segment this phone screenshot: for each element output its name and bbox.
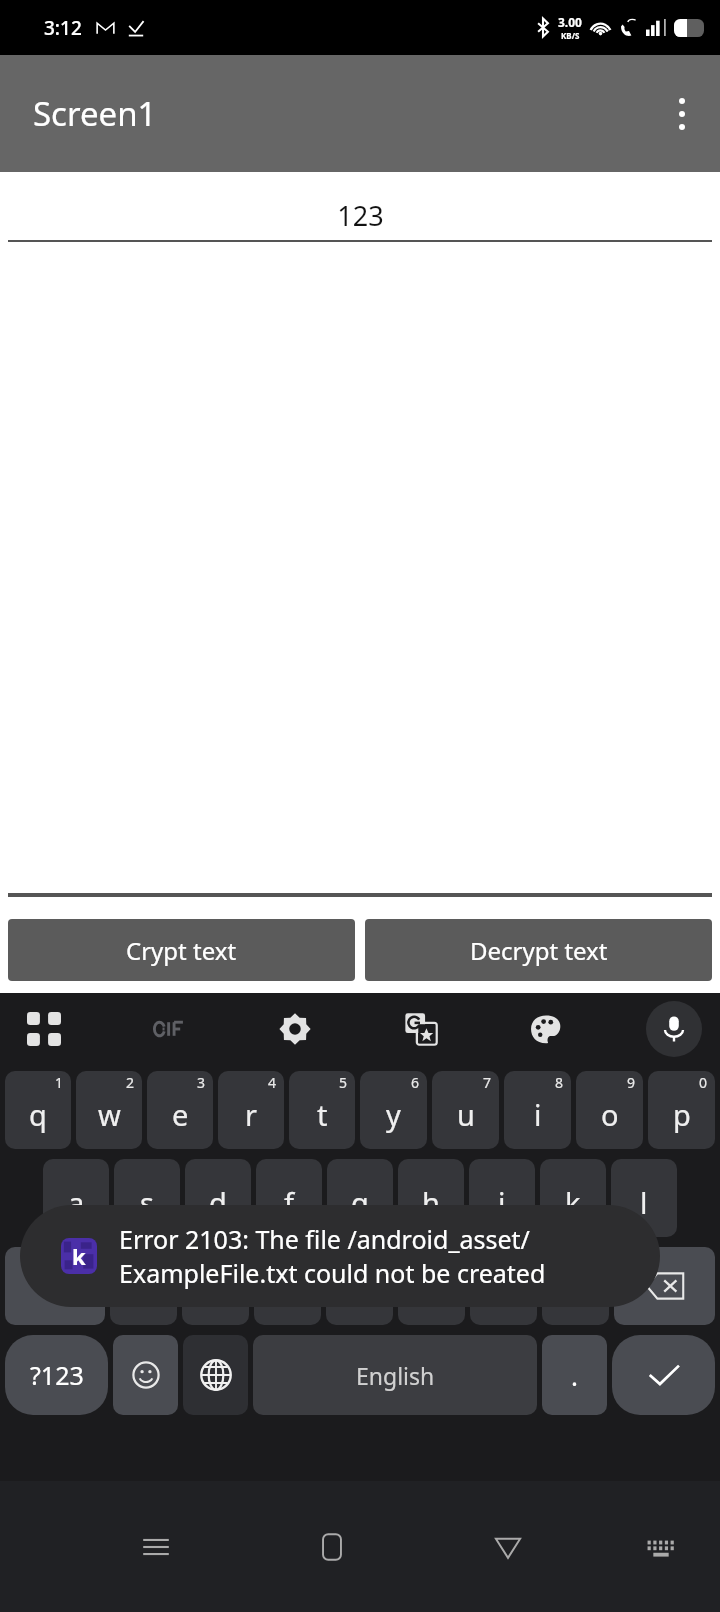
staticText: v: [352, 1271, 367, 1310]
staticText: p: [673, 1095, 691, 1134]
button[interactable]: k: [20, 1205, 660, 1307]
button[interactable]: 3: [147, 1071, 213, 1149]
button[interactable]: l: [611, 1159, 677, 1237]
staticText: 7: [483, 1073, 492, 1092]
button[interactable]: Voice input: [646, 1001, 702, 1057]
staticText: 1: [55, 1073, 64, 1092]
staticText: y: [386, 1095, 401, 1134]
button[interactable]: 2: [76, 1071, 142, 1149]
button[interactable]: Themes: [520, 1003, 572, 1055]
button[interactable]: Backspace: [614, 1247, 715, 1325]
button[interactable]: 6: [360, 1071, 427, 1149]
button[interactable]: Settings: [269, 1003, 321, 1055]
button[interactable]: g: [327, 1159, 393, 1237]
button[interactable]: Recent apps: [125, 1516, 187, 1578]
staticText: c: [281, 1271, 295, 1310]
button[interactable]: 1: [5, 1071, 71, 1149]
button[interactable]: ?123: [5, 1335, 108, 1415]
staticText: n: [495, 1271, 513, 1310]
staticText: g: [351, 1183, 369, 1222]
button[interactable]: 0: [648, 1071, 715, 1149]
staticText: i: [534, 1095, 542, 1134]
staticText: 3.00: [558, 14, 582, 30]
staticText: Decrypt text: [470, 934, 608, 967]
button[interactable]: m: [542, 1247, 609, 1325]
staticText: 0: [699, 1073, 708, 1092]
button[interactable]: Hide keyboard: [630, 1516, 692, 1578]
staticText: 4: [268, 1073, 277, 1092]
staticText: Error 2103: The file /android_asset/: [119, 1222, 530, 1256]
button[interactable]: Shift: [5, 1247, 105, 1325]
button[interactable]: 5: [289, 1071, 355, 1149]
button[interactable]: Back: [477, 1516, 539, 1578]
staticText: r: [245, 1095, 257, 1134]
button[interactable]: Enter: [612, 1335, 715, 1415]
staticText: u: [457, 1095, 475, 1134]
button[interactable]: 8: [504, 1071, 571, 1149]
button[interactable]: x: [182, 1247, 249, 1325]
staticText: e: [172, 1095, 189, 1134]
staticText: h: [422, 1183, 440, 1222]
staticText: .: [571, 1358, 578, 1393]
staticText: 6: [411, 1073, 420, 1092]
staticText: s: [140, 1183, 154, 1222]
button[interactable]: k: [540, 1159, 606, 1237]
button[interactable]: Apps: [18, 1003, 70, 1055]
button[interactable]: d: [185, 1159, 251, 1237]
button[interactable]: Home: [301, 1516, 363, 1578]
button[interactable]: j: [469, 1159, 535, 1237]
button[interactable]: n: [470, 1247, 537, 1325]
button[interactable]: English: [253, 1335, 537, 1415]
staticText: k: [565, 1183, 581, 1222]
button[interactable]: 123: [0, 190, 720, 240]
button[interactable]: Emoji: [113, 1335, 178, 1415]
staticText: a: [68, 1183, 85, 1222]
staticText: d: [209, 1183, 227, 1222]
button[interactable]: .: [542, 1335, 607, 1415]
button[interactable]: Crypt text: [8, 919, 355, 981]
button[interactable]: c: [254, 1247, 321, 1325]
staticText: b: [423, 1271, 441, 1310]
staticText: f: [284, 1183, 294, 1222]
button[interactable]: h: [398, 1159, 464, 1237]
staticText: l: [640, 1183, 648, 1222]
staticText: ?123: [30, 1358, 84, 1392]
staticText: o: [601, 1095, 619, 1134]
staticText: 123: [337, 197, 384, 234]
button[interactable]: More options: [658, 90, 706, 138]
staticText: 3:12: [44, 15, 82, 41]
button[interactable]: v: [326, 1247, 393, 1325]
staticText: x: [208, 1271, 224, 1310]
staticText: j: [498, 1183, 506, 1222]
button[interactable]: Change language: [183, 1335, 248, 1415]
button[interactable]: 7: [432, 1071, 499, 1149]
staticText: English: [356, 1360, 435, 1391]
button[interactable]: 4: [218, 1071, 284, 1149]
staticText: 5: [339, 1073, 348, 1092]
staticText: 9: [627, 1073, 636, 1092]
button[interactable]: 9: [576, 1071, 643, 1149]
button[interactable]: Translate: [395, 1003, 447, 1055]
staticText: ExampleFile.txt could not be created: [119, 1256, 546, 1290]
button[interactable]: f: [256, 1159, 322, 1237]
staticText: z: [137, 1271, 151, 1310]
staticText: Crypt text: [126, 934, 237, 967]
staticText: 2: [126, 1073, 135, 1092]
button[interactable]: z: [110, 1247, 177, 1325]
button[interactable]: a: [43, 1159, 109, 1237]
button[interactable]: s: [114, 1159, 180, 1237]
staticText: q: [29, 1095, 47, 1134]
staticText: k: [72, 1241, 86, 1271]
button[interactable]: Decrypt text: [365, 919, 712, 981]
staticText: KB/S: [561, 30, 580, 41]
staticText: 8: [555, 1073, 564, 1092]
staticText: Screen1: [33, 91, 157, 136]
staticText: 3: [197, 1073, 206, 1092]
staticText: w: [98, 1095, 121, 1134]
button[interactable]: b: [398, 1247, 465, 1325]
staticText: t: [317, 1095, 328, 1134]
button[interactable]: GIF: [144, 1003, 196, 1055]
